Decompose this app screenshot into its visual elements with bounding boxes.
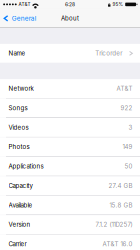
staticText: 50 <box>124 163 132 170</box>
staticText: AT&T <box>18 2 30 7</box>
staticText: Available <box>8 201 32 209</box>
staticText: Carrier <box>8 240 26 248</box>
staticText: 95% <box>113 2 124 7</box>
staticText: 15.8 GB <box>109 201 132 209</box>
button[interactable]: Photos <box>0 137 140 156</box>
staticText: 27.4 GB <box>108 182 132 189</box>
button[interactable]: Videos <box>0 118 140 137</box>
staticText: Applications <box>8 163 43 170</box>
button[interactable]: Songs <box>0 99 140 117</box>
staticText: 3 <box>128 124 132 131</box>
staticText: Videos <box>8 124 28 131</box>
staticText: Version <box>8 221 30 228</box>
staticText: Songs <box>8 104 27 112</box>
staticText: Network <box>8 85 33 92</box>
button[interactable]: Carrier <box>0 235 140 250</box>
button[interactable]: Available <box>0 196 140 215</box>
staticText: 6:28 <box>65 1 75 7</box>
button[interactable]: Network <box>0 79 140 98</box>
staticText: Tricorder <box>95 50 122 57</box>
staticText: AT&T <box>116 85 132 92</box>
staticText: 922 <box>120 104 132 112</box>
button[interactable]: Version <box>0 215 140 234</box>
button[interactable]: Capacity <box>0 176 140 195</box>
staticText: General <box>12 14 37 22</box>
staticText: 7.1.2 (11D257) <box>95 221 132 228</box>
button[interactable]: Applications <box>0 157 140 176</box>
staticText: Capacity <box>8 182 32 189</box>
staticText: About <box>61 15 79 22</box>
staticText: Name <box>8 50 25 57</box>
staticText: Photos <box>8 143 29 151</box>
staticText: 149 <box>122 143 132 151</box>
staticText: AT&T 16.0 <box>102 240 132 248</box>
button[interactable]: General <box>0 9 40 28</box>
button[interactable]: Name <box>0 44 140 63</box>
